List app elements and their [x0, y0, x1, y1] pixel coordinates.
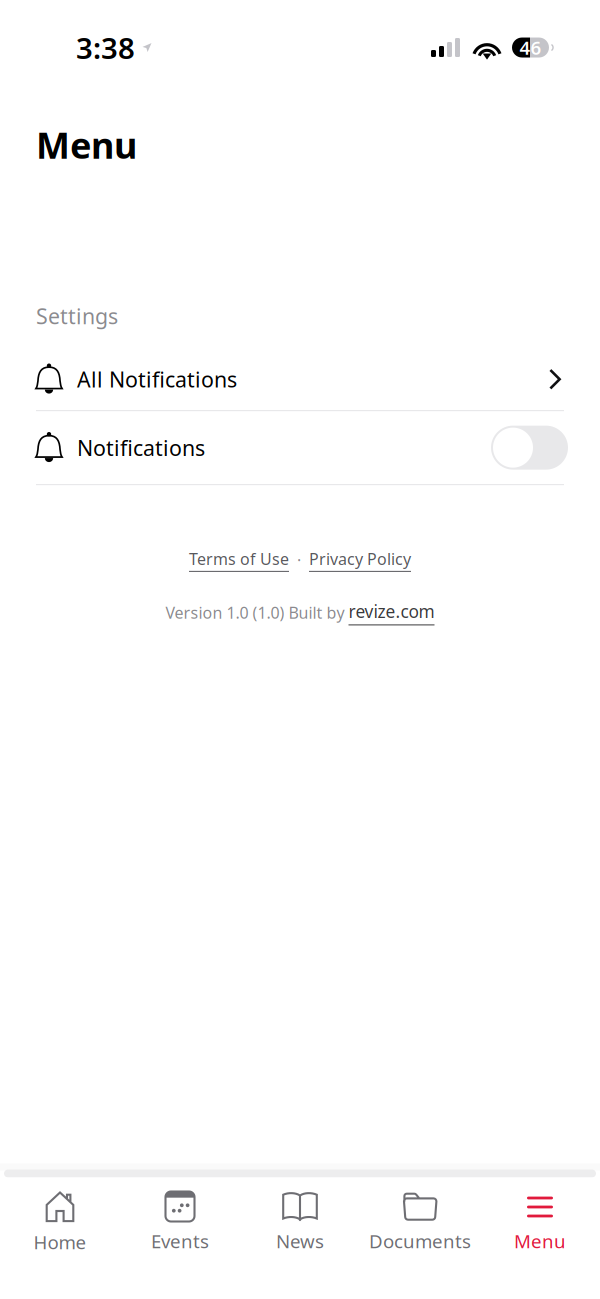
staticText: Events: [151, 1228, 209, 1253]
button[interactable]: Notifications, off: [491, 426, 564, 470]
staticText: ·: [289, 549, 309, 571]
button[interactable]: News: [240, 1177, 360, 1299]
staticText: Notifications: [77, 433, 205, 462]
button[interactable]: Privacy Policy: [309, 548, 411, 572]
button[interactable]: Home: [0, 1177, 120, 1299]
staticText: Version 1.0 (1.0) Built by: [165, 602, 348, 623]
button[interactable]: Terms of Use: [189, 548, 289, 572]
staticText: All Notifications: [77, 365, 237, 393]
button[interactable]: Notifications: [0, 411, 600, 484]
staticText: Privacy Policy: [309, 548, 411, 569]
button[interactable]: Menu: [480, 1177, 600, 1299]
staticText: revize.com: [348, 600, 434, 623]
staticText: Terms of Use: [189, 548, 289, 569]
button[interactable]: revize.com: [348, 600, 434, 625]
staticText: 3:38: [76, 28, 135, 67]
button[interactable]: Documents: [360, 1177, 480, 1299]
button[interactable]: All Notifications: [0, 348, 600, 410]
staticText: Documents: [369, 1228, 471, 1253]
button[interactable]: Events: [120, 1177, 240, 1299]
staticText: Settings: [36, 302, 118, 330]
staticText: 46: [519, 35, 541, 60]
staticText: Menu: [514, 1228, 566, 1253]
staticText: Home: [33, 1229, 86, 1254]
staticText: News: [276, 1228, 324, 1253]
staticText: Menu: [36, 121, 137, 169]
